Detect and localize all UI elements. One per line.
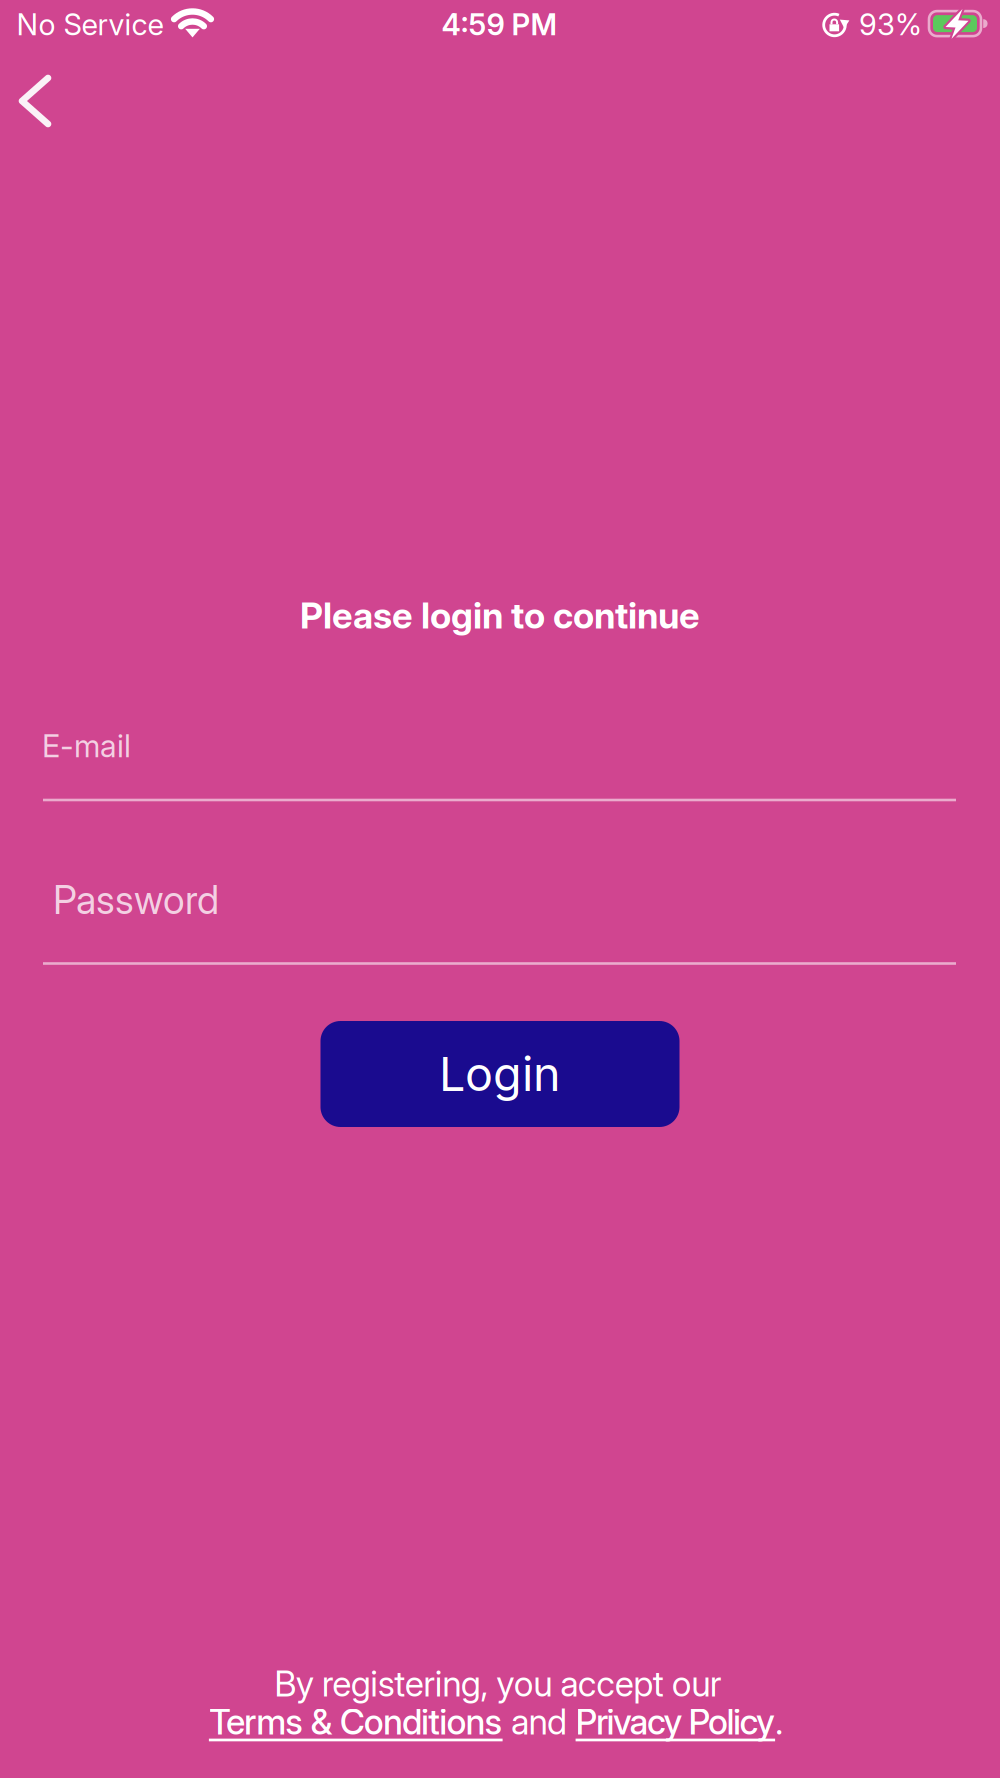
staticText: Password: [53, 877, 219, 923]
staticText: Terms & Conditions: [209, 1702, 503, 1742]
staticText: .: [775, 1702, 783, 1742]
button[interactable]: Back: [8, 70, 62, 132]
button[interactable]: Terms & Conditions: [209, 1702, 503, 1742]
staticText: 93%: [859, 7, 922, 42]
staticText: and: [503, 1702, 576, 1742]
staticText: Privacy Policy: [576, 1702, 775, 1742]
staticText: E-mail: [42, 728, 131, 764]
button[interactable]: Privacy Policy: [576, 1702, 775, 1742]
staticText: By registering, you accept our: [274, 1664, 722, 1704]
staticText: 4:59 PM: [441, 7, 557, 42]
staticText: No Service: [16, 7, 163, 42]
button[interactable]: Login: [320, 1021, 679, 1127]
staticText: Login: [439, 1046, 561, 1102]
staticText: Please login to continue: [300, 594, 700, 637]
